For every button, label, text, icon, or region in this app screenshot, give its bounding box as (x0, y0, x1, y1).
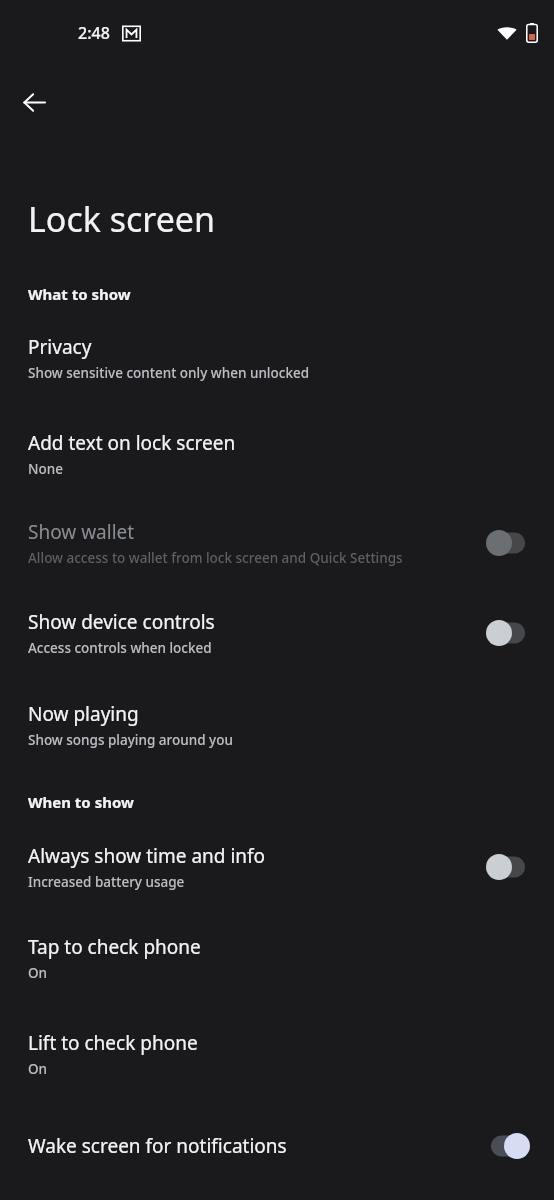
staticText: Lift to check phone (28, 1030, 198, 1056)
button[interactable]: Privacy (0, 334, 554, 382)
staticText: Always show time and info (28, 843, 266, 869)
button[interactable]: Back (12, 80, 56, 124)
staticText: Show songs playing around you (28, 731, 233, 749)
button[interactable]: Show device controls (0, 609, 554, 657)
button[interactable]: Show wallet (0, 519, 554, 567)
staticText: Add text on lock screen (28, 430, 236, 456)
button[interactable]: What to show (0, 284, 554, 304)
staticText: 2:48 (78, 22, 110, 44)
button[interactable]: Add text on lock screen (0, 430, 554, 478)
button[interactable]: Tap to check phone (0, 934, 554, 982)
staticText: On (28, 964, 48, 982)
button[interactable]: Toggle (482, 847, 534, 887)
staticText: Privacy (28, 334, 92, 360)
staticText: What to show (28, 284, 131, 304)
button[interactable]: Wake screen for notifications (0, 1126, 554, 1166)
staticText: Now playing (28, 701, 139, 727)
staticText: Increased battery usage (28, 873, 185, 891)
staticText: Lock screen (28, 196, 216, 242)
button[interactable]: When to show (0, 792, 554, 812)
button[interactable]: Now playing (0, 701, 554, 749)
button[interactable]: Toggle (482, 1126, 534, 1166)
button[interactable]: Toggle (482, 613, 534, 653)
staticText: None (28, 460, 63, 478)
staticText: Allow access to wallet from lock screen … (28, 549, 403, 567)
staticText: Show sensitive content only when unlocke… (28, 364, 310, 382)
staticText: Tap to check phone (28, 934, 201, 960)
staticText: Access controls when locked (28, 639, 212, 657)
staticText: Show device controls (28, 609, 215, 635)
button[interactable]: Lift to check phone (0, 1030, 554, 1078)
staticText: Wake screen for notifications (28, 1133, 287, 1159)
staticText: Show wallet (28, 519, 135, 545)
staticText: On (28, 1060, 48, 1078)
staticText: When to show (28, 792, 134, 812)
button[interactable]: Toggle (482, 523, 534, 563)
button[interactable]: Always show time and info (0, 843, 554, 891)
